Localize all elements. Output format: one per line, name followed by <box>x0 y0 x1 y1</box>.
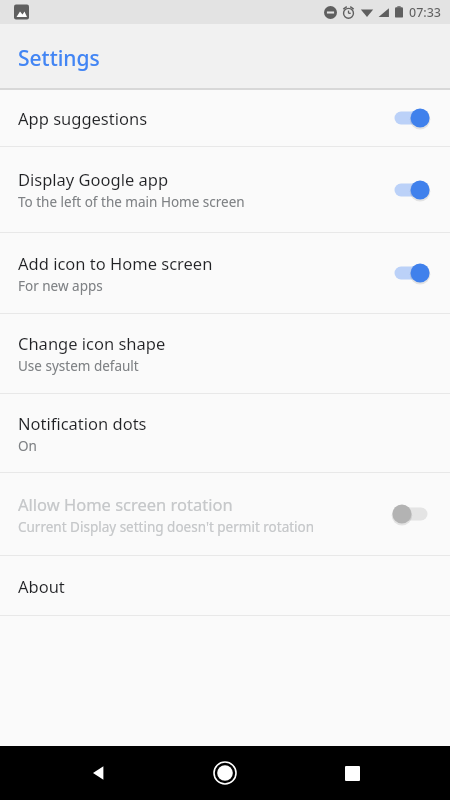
staticText: App suggestions <box>18 107 148 129</box>
button[interactable]: Home <box>197 746 253 800</box>
staticText: Current Display setting doesn't permit r… <box>18 518 315 536</box>
staticText: Allow Home screen rotation <box>18 493 233 515</box>
button[interactable]: About <box>0 556 450 615</box>
button[interactable]: Toggle on <box>388 258 434 288</box>
staticText: Add icon to Home screen <box>18 252 213 274</box>
button[interactable]: Change icon shape <box>0 314 450 393</box>
button[interactable]: Toggle on <box>388 175 434 205</box>
button[interactable]: App suggestions <box>0 90 450 146</box>
staticText: 07:33 <box>409 4 442 21</box>
staticText: Display Google app <box>18 168 169 190</box>
button[interactable]: Display Google app <box>0 147 450 232</box>
button[interactable]: Notification dots <box>0 394 450 472</box>
button[interactable]: Toggle off <box>388 499 434 529</box>
staticText: Settings <box>18 44 100 73</box>
button[interactable]: Add icon to Home screen <box>0 233 450 313</box>
button[interactable]: Allow Home screen rotation <box>0 473 450 555</box>
staticText: About <box>18 575 65 597</box>
button[interactable]: Back <box>71 746 127 800</box>
staticText: To the left of the main Home screen <box>18 193 245 211</box>
button[interactable]: Toggle on <box>388 103 434 133</box>
staticText: For new apps <box>18 277 103 295</box>
staticText: On <box>18 437 37 455</box>
staticText: Use system default <box>18 357 139 375</box>
staticText: Change icon shape <box>18 332 166 354</box>
button[interactable]: Recent apps <box>324 746 380 800</box>
staticText: Notification dots <box>18 412 147 434</box>
